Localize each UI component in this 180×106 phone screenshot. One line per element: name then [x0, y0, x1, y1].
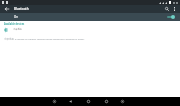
staticText: 小米手机 is visible to nearby devices while …: [4, 37, 85, 40]
button[interactable]: Recent apps: [103, 97, 110, 106]
button[interactable]: 小米手机: [0, 26, 180, 33]
button[interactable]: Search: [163, 5, 171, 13]
staticText: On: [14, 15, 18, 19]
button[interactable]: Menu: [119, 97, 126, 106]
button[interactable]: Bluetooth on: [164, 13, 180, 21]
staticText: 小米手机: [13, 28, 22, 31]
button[interactable]: More options: [171, 5, 178, 13]
button[interactable]: Navigate up: [0, 5, 13, 13]
button[interactable]: Home: [85, 97, 92, 106]
staticText: Bluetooth: [14, 7, 29, 11]
button[interactable]: Screenshot: [51, 97, 58, 106]
button[interactable]: Back: [67, 97, 74, 106]
staticText: Available devices: [4, 22, 25, 25]
